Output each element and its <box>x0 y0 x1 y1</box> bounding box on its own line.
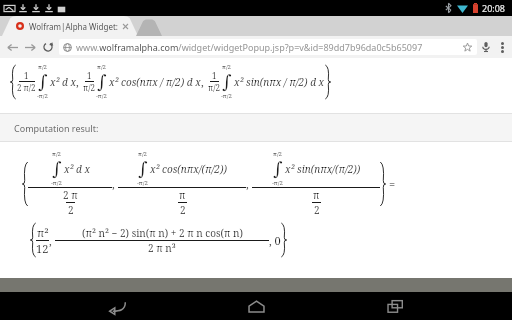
button[interactable]: Bookmark <box>461 41 473 53</box>
button[interactable]: Close tab <box>121 22 130 31</box>
staticText: π/2 <box>38 63 47 71</box>
staticText: x² d x <box>64 162 90 176</box>
staticText: , <box>49 233 55 248</box>
staticText: x² cos(nπx / π/2) d x <box>109 75 201 89</box>
staticText: π/2 <box>52 150 61 158</box>
staticText: ∫ <box>273 158 283 179</box>
staticText: π/2 <box>97 63 106 71</box>
staticText: -π/2 <box>96 92 107 100</box>
staticText: 20:08 <box>482 2 506 14</box>
staticText: Wolfram|Alpha Widget: <box>29 21 118 32</box>
staticText: = <box>389 176 396 191</box>
staticText: -π/2 <box>221 92 232 100</box>
button[interactable]: www.wolframalpha.com/widget/widgetPopup.… <box>59 39 477 55</box>
staticText: 2 <box>180 203 186 217</box>
staticText: , <box>201 74 207 89</box>
staticText: π/2 <box>222 63 231 71</box>
staticText: ∫ <box>97 71 107 92</box>
staticText: π/2 <box>138 150 147 158</box>
staticText: x² sin(nπx / π/2) d x <box>234 75 325 89</box>
staticText: x² d x <box>50 75 76 89</box>
staticText: x² cos(nπx/(π/2)) <box>150 162 227 176</box>
staticText: ∫ <box>222 71 232 92</box>
staticText: -π/2 <box>272 179 283 187</box>
button[interactable]: Other tab <box>136 19 162 36</box>
staticText: x² sin(nπx/(π/2)) <box>285 162 361 176</box>
staticText: π <box>179 188 186 202</box>
staticText: 2 <box>314 203 320 217</box>
staticText: , <box>112 176 118 191</box>
staticText: 2 π <box>63 188 78 202</box>
staticText: 2 <box>68 203 74 217</box>
button[interactable]: Recent apps <box>373 292 417 320</box>
staticText: -π/2 <box>51 179 62 187</box>
staticText: π/2 <box>208 82 220 93</box>
button[interactable]: Home <box>234 292 278 320</box>
staticText: , <box>76 74 82 89</box>
staticText: www.wolframalpha.com/widget/widgetPopup.… <box>76 41 423 53</box>
button[interactable]: Wolfram|Alpha Widget: <box>2 16 138 36</box>
staticText: 12 <box>36 241 49 256</box>
button[interactable]: Back <box>95 292 139 320</box>
staticText: ∫ <box>52 158 62 179</box>
staticText: 1 <box>24 70 29 81</box>
staticText: , <box>246 176 252 191</box>
staticText: π² <box>37 225 49 240</box>
staticText: ∫ <box>38 71 48 92</box>
button[interactable]: Reload <box>39 38 57 56</box>
staticText: ∫ <box>138 158 148 179</box>
staticText: π/2 <box>273 150 282 158</box>
staticText: (π² n² − 2) sin(π n) + 2 π n cos(π n) <box>82 226 243 240</box>
staticText: -π/2 <box>37 92 48 100</box>
button[interactable]: Voice search <box>477 38 495 56</box>
staticText: 1 <box>87 70 92 81</box>
staticText: 1 <box>212 70 217 81</box>
staticText: Computation result: <box>14 122 99 134</box>
staticText: , 0 <box>269 233 281 248</box>
staticText: -π/2 <box>137 179 148 187</box>
staticText: π/2 <box>83 82 95 93</box>
staticText: 2 π n³ <box>148 241 176 255</box>
staticText: π <box>313 188 320 202</box>
staticText: 2 π/2 <box>17 82 36 93</box>
button[interactable]: Back <box>3 38 21 56</box>
button[interactable]: More options <box>495 40 509 54</box>
button[interactable]: Forward <box>21 38 39 56</box>
